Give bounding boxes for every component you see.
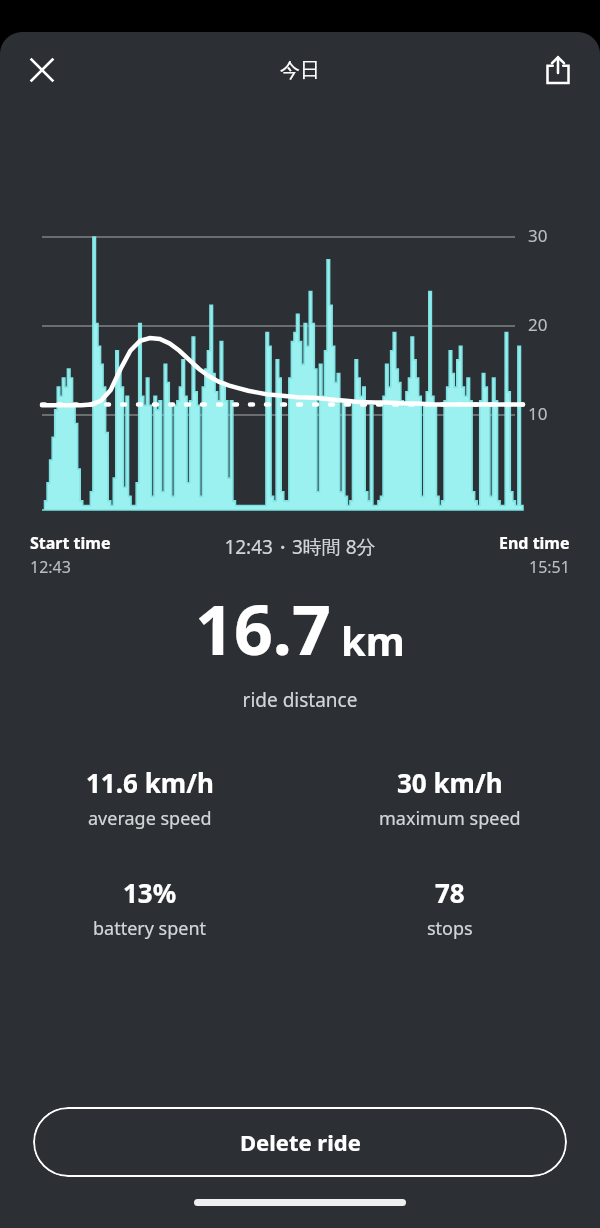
staticText: 78 xyxy=(435,875,465,910)
staticText: Delete ride xyxy=(240,1127,361,1157)
staticText: stops xyxy=(427,916,473,941)
staticText: 12:43・3時間 8分 xyxy=(0,534,600,560)
button[interactable]: Delete ride xyxy=(33,1107,567,1177)
staticText: 30 xyxy=(528,224,548,247)
staticText: 10 xyxy=(528,402,548,425)
staticText: 20 xyxy=(528,313,548,336)
button[interactable]: Close xyxy=(14,42,70,98)
staticText: battery spent xyxy=(93,916,207,941)
staticText: maximum speed xyxy=(379,806,521,831)
staticText: 13% xyxy=(123,875,177,910)
staticText: 30 km/h xyxy=(397,765,503,800)
staticText: 11.6 km/h xyxy=(86,765,214,800)
staticText: 16.7 xyxy=(195,582,331,675)
staticText: End time xyxy=(499,532,570,554)
staticText: 12:43 xyxy=(30,556,71,578)
button[interactable]: Share xyxy=(530,42,586,98)
staticText: km xyxy=(341,613,405,667)
staticText: Start time xyxy=(30,532,111,554)
staticText: 今日 xyxy=(280,58,320,83)
staticText: average speed xyxy=(88,806,212,831)
staticText: ride distance xyxy=(0,687,600,713)
staticText: 15:51 xyxy=(529,556,570,578)
